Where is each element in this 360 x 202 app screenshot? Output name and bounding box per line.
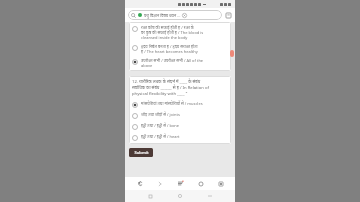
button[interactable]: उपरोक्त सभी / उपरोक्त सभी / All of the	[132, 58, 228, 68]
staticText: 12. शारीरिक लचक के संदर्भ में ____ के सं…	[132, 79, 201, 85]
button[interactable]: पशु विज्ञान विषय चयन …	[128, 10, 222, 20]
staticText: उपरोक्त सभी / उपरोक्त सभी / All of the	[141, 58, 204, 63]
button[interactable]: मांसपेशियां तथा मांसपेशियाँ से / muscles	[132, 101, 228, 108]
button[interactable]: Submit	[129, 148, 153, 157]
staticText: हड्डी तथा / हड्डी से / heart	[141, 134, 180, 139]
button[interactable]: हृदय निर्बल बनता ह / हृदय सशक्त होता	[132, 44, 228, 54]
button[interactable]: Home	[175, 191, 185, 201]
button[interactable]: Forward	[154, 178, 165, 189]
button[interactable]: Stop loading	[182, 13, 187, 18]
button[interactable]: Tabs	[215, 178, 226, 189]
staticText: cleansed inside the body	[141, 35, 188, 40]
button[interactable]: जोड़ तथा जोड़ों से / joints	[132, 112, 228, 119]
staticText: जोड़ तथा जोड़ों से / joints	[141, 112, 180, 117]
button[interactable]: Tabs	[225, 12, 232, 19]
staticText: ह / The heart becomes healthy	[141, 49, 198, 54]
button[interactable]: Recents	[145, 191, 155, 201]
staticText: हड्डी तथा / हड्डी से / bone	[141, 123, 180, 128]
button[interactable]: Back	[205, 191, 215, 201]
staticText: physical flexibility with ____ ”	[132, 91, 188, 97]
staticText: Submit	[134, 150, 149, 156]
button[interactable]: हड्डी तथा / हड्डी से / bone	[132, 123, 228, 130]
button[interactable]: हड्डी तथा / हड्डी से / heart	[132, 134, 228, 141]
staticText: हृदय निर्बल बनता ह / हृदय सशक्त होता	[141, 44, 198, 49]
button[interactable]: रक्त कोष की सफाई होती ह / रक्त के	[132, 25, 228, 40]
button[interactable]: Home	[195, 178, 206, 189]
staticText: रक्त कोष की सफाई होती ह / रक्त के	[141, 25, 194, 30]
button[interactable]: Menu	[175, 178, 186, 189]
staticText: above	[141, 63, 153, 68]
button[interactable]: Back	[134, 178, 145, 189]
staticText: मांसपेशियां तथा मांसपेशियाँ से / muscles	[141, 101, 203, 106]
staticText: वर कुष की सफाई होती ह / The blood is	[141, 30, 204, 35]
staticText: सर्वाधिक का संबंध ______ से ह / In Relat…	[132, 85, 209, 91]
staticText: पशु विज्ञान विषय चयन …	[144, 13, 181, 18]
